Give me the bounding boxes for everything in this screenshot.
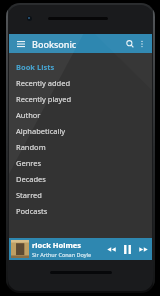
- staticText: Random: [16, 142, 46, 152]
- button[interactable]: Search: [123, 37, 136, 50]
- button[interactable]: Author: [16, 107, 152, 123]
- button[interactable]: Recently played: [16, 91, 152, 107]
- staticText: Book Lists: [16, 62, 55, 72]
- button[interactable]: Decades: [16, 171, 152, 187]
- staticText: Starred: [16, 190, 42, 200]
- button[interactable]: Rewind: [104, 242, 119, 257]
- button[interactable]: Book Lists: [16, 59, 152, 75]
- button[interactable]: Recently added: [16, 75, 152, 91]
- staticText: Author: [16, 110, 41, 120]
- button[interactable]: Open navigation drawer: [14, 37, 27, 50]
- staticText: Genres: [16, 158, 42, 168]
- staticText: Booksonic: [32, 38, 77, 50]
- staticText: Podcasts: [16, 206, 48, 216]
- button[interactable]: More options: [136, 38, 147, 49]
- button[interactable]: Genres: [16, 155, 152, 171]
- button[interactable]: Fast forward: [136, 242, 151, 257]
- button[interactable]: Random: [16, 139, 152, 155]
- button[interactable]: Pause: [119, 241, 136, 258]
- staticText: Sir Arthur Conan Doyle: [32, 251, 92, 258]
- staticText: Decades: [16, 174, 46, 184]
- button[interactable]: rlock Holmes: [9, 238, 152, 260]
- button[interactable]: Podcasts: [16, 203, 152, 219]
- staticText: Recently added: [16, 78, 71, 88]
- staticText: rlock Holmes: [32, 240, 81, 250]
- staticText: Recently played: [16, 94, 72, 104]
- staticText: Alphabetically: [16, 126, 66, 136]
- button[interactable]: Starred: [16, 187, 152, 203]
- button[interactable]: Alphabetically: [16, 123, 152, 139]
